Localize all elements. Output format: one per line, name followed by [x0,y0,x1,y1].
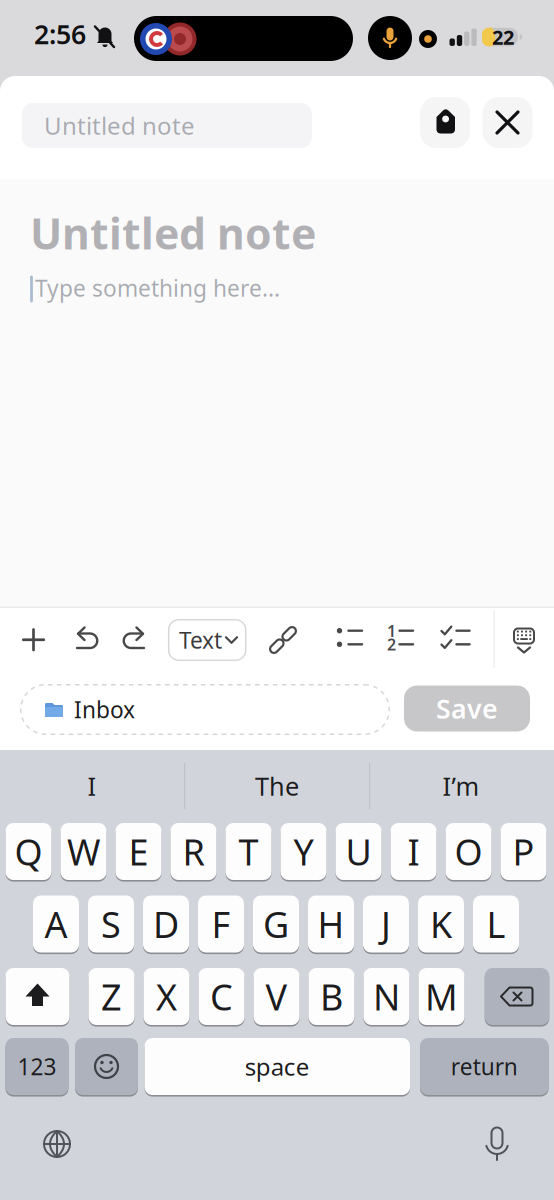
button[interactable]: The [192,756,362,816]
staticText: V [265,973,287,1020]
button[interactable]: M [418,967,464,1026]
button[interactable]: H [308,894,354,953]
staticText: E [128,828,148,875]
button[interactable]: Inbox [0,0,554,1200]
button[interactable] [0,0,554,1200]
button[interactable]: 1 [0,0,554,1200]
staticText: M [425,973,458,1020]
staticText: space [245,1051,310,1082]
staticText: Inbox [74,694,135,724]
button[interactable] [0,0,554,1200]
button[interactable] [485,967,549,1026]
staticText: 2 [387,634,396,655]
button[interactable]: R [170,822,216,881]
button[interactable]: A [33,894,79,953]
button[interactable]: return [420,1037,549,1096]
button[interactable]: J [363,894,409,953]
button[interactable] [0,0,554,1200]
staticText: J [381,900,391,948]
button[interactable]: T [225,822,271,881]
button[interactable]: F [198,894,244,953]
staticText: 1 [387,620,396,641]
staticText: Type something here... [35,273,280,303]
staticText: H [317,900,344,948]
staticText: K [430,900,452,948]
staticText: 123 [17,1051,56,1081]
button[interactable]: D [143,894,189,953]
button[interactable] [0,0,554,1200]
staticText: G [263,900,289,948]
button[interactable]: P [500,822,546,881]
staticText: F [211,900,230,948]
staticText: L [486,900,505,948]
button[interactable]: E [115,822,161,881]
button[interactable]: U [335,822,381,881]
staticText: C [210,973,233,1020]
staticText: N [373,973,400,1020]
staticText: 2:56 [34,16,86,52]
button[interactable]: S [88,894,134,953]
button[interactable]: V [253,967,299,1026]
button[interactable]: X [143,967,189,1026]
button[interactable] [0,0,554,1200]
button[interactable]: space [145,1037,410,1096]
staticText: return [451,1051,518,1081]
button[interactable]: Q [5,822,51,881]
staticText: Save [436,691,498,726]
staticText: S [101,900,121,948]
button[interactable]: I [7,756,177,816]
button[interactable] [0,0,554,1200]
staticText: B [320,973,343,1020]
button[interactable] [0,0,554,1200]
button[interactable]: O [445,822,491,881]
button[interactable]: L [473,894,519,953]
staticText: The [255,769,299,803]
button[interactable]: I [390,822,436,881]
staticText: D [153,900,179,948]
button[interactable]: N [363,967,409,1026]
button[interactable] [0,0,554,1200]
staticText: I [87,769,96,803]
button[interactable] [0,0,554,1200]
button[interactable]: G [253,894,299,953]
staticText: P [512,828,534,875]
staticText: X [156,973,177,1020]
staticText: W [67,828,100,875]
staticText: Z [101,973,122,1020]
staticText: Text [179,625,222,655]
staticText: U [345,828,371,875]
button[interactable]: Text [0,0,554,1200]
button[interactable]: C [198,967,244,1026]
button[interactable]: Untitled note [22,103,312,148]
staticText: T [238,828,258,875]
staticText: Untitled note [44,110,195,141]
button[interactable]: Save [404,685,530,731]
staticText: R [182,828,204,875]
button[interactable] [0,0,554,1200]
button[interactable]: 123 [5,1037,68,1096]
button[interactable] [5,967,69,1026]
staticText: Y [293,828,313,875]
button[interactable]: I’m [376,756,546,816]
button[interactable]: Y [280,822,326,881]
button[interactable]: B [308,967,354,1026]
staticText: I’m [442,769,479,803]
staticText: Untitled note [30,205,316,261]
staticText: Q [14,828,42,875]
staticText: 22 [492,24,514,50]
button[interactable]: Z [88,967,134,1026]
staticText: I [407,828,419,875]
button[interactable]: K [418,894,464,953]
button[interactable] [0,0,554,1200]
staticText: A [44,900,67,948]
button[interactable]: W [60,822,106,881]
button[interactable] [75,1037,138,1096]
staticText: O [454,828,482,875]
